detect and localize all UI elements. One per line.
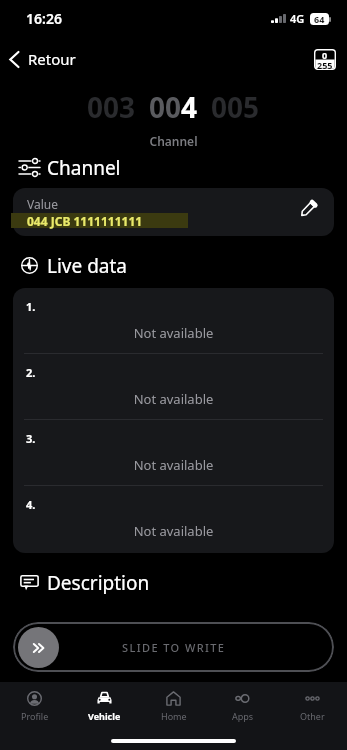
staticText: Not available bbox=[13, 456, 334, 474]
button[interactable]: 1. bbox=[13, 288, 334, 354]
staticText: Retour bbox=[28, 49, 76, 69]
button[interactable]: Edit value bbox=[301, 200, 317, 216]
button[interactable]: Vehicle bbox=[70, 686, 139, 722]
staticText: Value bbox=[27, 196, 58, 212]
staticText: 255 bbox=[317, 59, 333, 70]
button[interactable]: 2. bbox=[13, 354, 334, 420]
staticText: 044 JCB 1111111111 bbox=[27, 213, 143, 229]
staticText: 003 bbox=[87, 88, 136, 126]
staticText: 2. bbox=[26, 365, 36, 380]
staticText: Apps bbox=[232, 710, 254, 722]
staticText: Live data bbox=[47, 253, 128, 277]
staticText: 0 bbox=[322, 49, 328, 59]
button[interactable]: 4. bbox=[13, 486, 334, 552]
staticText: Not available bbox=[13, 390, 334, 408]
button[interactable]: Counter 0 of 255 bbox=[310, 45, 340, 74]
staticText: Other bbox=[300, 710, 325, 722]
button[interactable]: Apps bbox=[208, 686, 277, 722]
staticText: 4. bbox=[26, 497, 36, 512]
staticText: 4G bbox=[290, 11, 305, 26]
staticText: 1. bbox=[26, 299, 36, 314]
button[interactable]: Home bbox=[139, 686, 208, 722]
staticText: 16:26 bbox=[26, 9, 62, 28]
button[interactable] bbox=[13, 188, 334, 236]
staticText: 3. bbox=[26, 431, 36, 446]
staticText: Channel bbox=[0, 133, 347, 149]
button[interactable]: SLIDE TO WRITE bbox=[13, 622, 334, 672]
button[interactable]: Profile bbox=[0, 686, 69, 722]
button[interactable]: 3. bbox=[13, 420, 334, 486]
staticText: Profile bbox=[21, 710, 49, 722]
staticText: 005 bbox=[211, 88, 260, 126]
button[interactable]: Other bbox=[278, 686, 347, 722]
staticText: Home bbox=[161, 710, 187, 722]
staticText: SLIDE TO WRITE bbox=[122, 640, 226, 655]
staticText: 64 bbox=[314, 13, 325, 25]
staticText: Not available bbox=[13, 522, 334, 540]
staticText: Vehicle bbox=[88, 710, 121, 722]
staticText: Not available bbox=[13, 324, 334, 342]
button[interactable]: Retour bbox=[0, 43, 88, 75]
staticText: Channel bbox=[47, 155, 121, 179]
staticText: 004 bbox=[149, 88, 198, 126]
staticText: Description bbox=[47, 570, 150, 594]
